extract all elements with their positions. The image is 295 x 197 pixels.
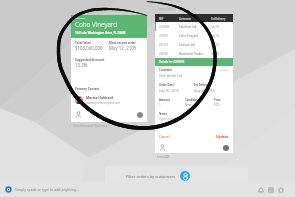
staticText: New: [185, 103, 214, 107]
staticText: $29..: [214, 103, 230, 107]
staticText: 15.3%: [75, 62, 88, 68]
staticText: July 18: [211, 34, 231, 38]
button[interactable]: Tasks: [266, 185, 276, 195]
staticText: Price: [214, 98, 230, 102]
button[interactable]: [71, 15, 147, 38]
staticText: Notes: [159, 112, 167, 116]
button[interactable]: Marisa Hubbard: [71, 93, 147, 107]
staticText: July 04: [211, 25, 231, 29]
staticText: Filter orders by customers: [126, 174, 176, 179]
staticText: Details for #290896: [159, 60, 185, 64]
staticText: Total Sales: [75, 41, 91, 45]
staticText: marisa@cohovineyard.com: [86, 101, 121, 105]
staticText: Est Delivery: [211, 17, 231, 20]
staticText: Aug 04, 2015: [194, 88, 215, 93]
button[interactable]: Notifications: [256, 185, 266, 195]
staticText: Coho Vineyard: [75, 20, 118, 29]
staticText: #290896: [159, 25, 179, 29]
staticText: from Microsoft Dynamics: [73, 124, 108, 128]
staticText: May 12, 2105: [109, 45, 137, 51]
staticText: Simply speak or type to add anything...: [15, 187, 79, 192]
button[interactable]: #290896: [155, 22, 233, 31]
button[interactable]: #80185: [155, 49, 233, 58]
staticText: Aug 02: [211, 52, 231, 56]
button[interactable]: Account: [159, 144, 166, 151]
button[interactable]: #78937: [155, 31, 233, 40]
staticText: #80185: [159, 52, 179, 56]
staticText: Coho Vineyard: [179, 34, 211, 38]
staticText: Est Delivery: [194, 83, 210, 87]
staticText: from SAP: [157, 155, 170, 159]
staticText: Amount: [159, 98, 185, 102]
staticText: Suggested discount: [75, 58, 105, 62]
staticText: Fabrikam Ltd: [179, 25, 211, 29]
staticText: Update: [216, 134, 229, 139]
button[interactable]: Update: [216, 134, 229, 139]
staticText: Contoso Ltd: [179, 43, 211, 47]
button[interactable]: Cancel: [159, 134, 170, 139]
button[interactable]: #82093: [155, 40, 233, 49]
staticText: Primary Contact: [75, 87, 100, 91]
staticText: ACCOUNT: [75, 17, 86, 20]
button[interactable]: Home: [276, 185, 286, 195]
staticText: 1: [159, 103, 185, 107]
staticText: Order Date: [159, 83, 174, 87]
button[interactable]: Account: [75, 111, 82, 118]
button[interactable]: More: [223, 145, 229, 151]
staticText: July 30, 2015: [159, 88, 179, 93]
staticText: Type a comment...: [159, 117, 187, 121]
button[interactable]: Cortana: [5, 186, 12, 193]
staticText: Condition: [185, 98, 214, 102]
staticText: Customer: [179, 17, 211, 20]
staticText: July 29: [211, 43, 231, 47]
staticText: $103,000,000: [75, 45, 103, 51]
staticText: Marisa Hubbard: [86, 95, 114, 100]
staticText: #82093: [159, 43, 179, 47]
staticText: Autopolis: [218, 68, 230, 71]
staticText: #78937: [159, 34, 179, 38]
button[interactable]: Filter orders by customers: [126, 171, 190, 181]
staticText: Most recent order: [109, 41, 136, 45]
staticText: Cancel: [159, 134, 170, 139]
staticText: Customer: [159, 68, 218, 72]
staticText: Open Orders: [158, 7, 176, 11]
staticText: 134 Lake Washington Drive, FL 20848: [75, 31, 126, 35]
staticText: REF: [159, 17, 179, 20]
staticText: Northwind Traders: [179, 52, 211, 56]
button[interactable]: More: [137, 112, 143, 118]
staticText: Vinh Aridel Ltd: [159, 73, 183, 78]
